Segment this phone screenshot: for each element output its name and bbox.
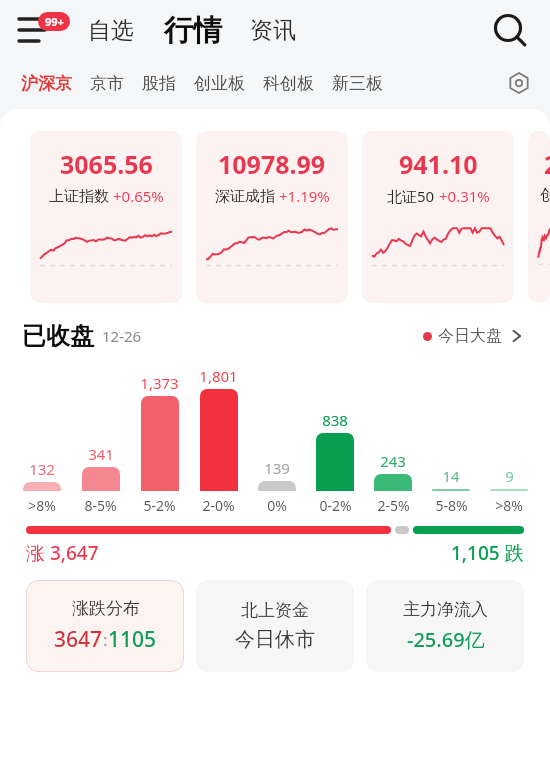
staticText: -25.69亿 xyxy=(407,626,485,653)
staticText: 14 xyxy=(442,466,460,486)
staticText: 行情 xyxy=(164,12,222,49)
button[interactable]: 涨跌分布 xyxy=(26,580,184,672)
button[interactable]: 资讯 xyxy=(246,16,300,45)
staticText: 5-2% xyxy=(143,496,176,515)
button[interactable]: 941.10 xyxy=(362,131,514,303)
staticText: 主力净流入 xyxy=(403,599,488,620)
staticText: 2-0% xyxy=(202,496,235,515)
staticText: 自选 xyxy=(88,16,134,45)
button[interactable]: 行情 xyxy=(160,12,226,49)
staticText: 深证成指 xyxy=(215,187,275,206)
staticText: 8-5% xyxy=(84,496,117,515)
staticText: 9 xyxy=(505,466,514,486)
staticText: 2-5% xyxy=(377,496,410,515)
button[interactable]: 创业板 xyxy=(187,69,252,98)
staticText: 132 xyxy=(29,459,55,479)
staticText: 941.10 xyxy=(399,147,478,181)
button[interactable]: 京市 xyxy=(83,69,131,98)
staticText: 涨跌分布 xyxy=(72,598,140,619)
staticText: 10978.99 xyxy=(218,147,326,181)
button[interactable]: Menu, 99 plus notifications xyxy=(16,10,76,50)
button[interactable]: 今日大盘 xyxy=(419,322,528,350)
staticText: 已收盘 xyxy=(22,321,94,351)
staticText: 沪深京 xyxy=(21,73,72,94)
button[interactable]: 主力净流入 xyxy=(366,580,524,672)
button[interactable]: 新三板 xyxy=(325,69,390,98)
button[interactable]: 3065.56 xyxy=(30,131,182,303)
button[interactable]: 北上资金 xyxy=(196,580,354,672)
staticText: 资讯 xyxy=(250,16,296,45)
button[interactable]: Search xyxy=(488,8,532,52)
staticText: 股指 xyxy=(142,73,176,94)
staticText: 139 xyxy=(264,458,290,478)
staticText: 京市 xyxy=(90,73,124,94)
staticText: 1,105 跌 xyxy=(451,540,524,566)
staticText: 99+ xyxy=(45,14,64,29)
staticText: 新三板 xyxy=(332,73,383,94)
staticText: 创业板 xyxy=(194,73,245,94)
staticText: +0.31% xyxy=(439,186,490,206)
staticText: 2 xyxy=(544,147,550,181)
staticText: 科创板 xyxy=(263,73,314,94)
staticText: : xyxy=(103,628,108,651)
staticText: 838 xyxy=(322,410,348,430)
staticText: +1.19% xyxy=(279,186,330,206)
staticText: 341 xyxy=(88,444,114,464)
staticText: 1,801 xyxy=(199,366,238,386)
staticText: 1105 xyxy=(108,625,157,654)
button[interactable]: 2 xyxy=(528,131,550,303)
staticText: 3647 xyxy=(54,625,103,654)
staticText: 今日休市 xyxy=(235,627,315,652)
staticText: 上证指数 xyxy=(49,187,109,206)
button[interactable]: 自选 xyxy=(84,16,138,45)
staticText: 243 xyxy=(380,451,406,471)
staticText: 0% xyxy=(267,496,287,515)
staticText: 涨 3,647 xyxy=(26,540,99,566)
button[interactable]: 股指 xyxy=(135,69,183,98)
staticText: >8% xyxy=(28,496,56,515)
staticText: 北证50 xyxy=(387,186,435,206)
staticText: 今日大盘 xyxy=(438,326,502,346)
staticText: 创 xyxy=(540,186,550,205)
staticText: 0-2% xyxy=(319,496,352,515)
staticText: +0.65% xyxy=(113,186,164,206)
staticText: 5-8% xyxy=(435,496,468,515)
staticText: 12-26 xyxy=(102,326,142,346)
staticText: 北上资金 xyxy=(241,600,309,621)
button[interactable]: 科创板 xyxy=(256,69,321,98)
staticText: 3065.56 xyxy=(60,147,153,181)
staticText: 1,373 xyxy=(140,373,179,393)
staticText: >8% xyxy=(495,496,523,515)
button[interactable]: 沪深京 xyxy=(14,69,79,98)
button[interactable]: Settings xyxy=(502,66,536,100)
button[interactable]: 10978.99 xyxy=(196,131,348,303)
